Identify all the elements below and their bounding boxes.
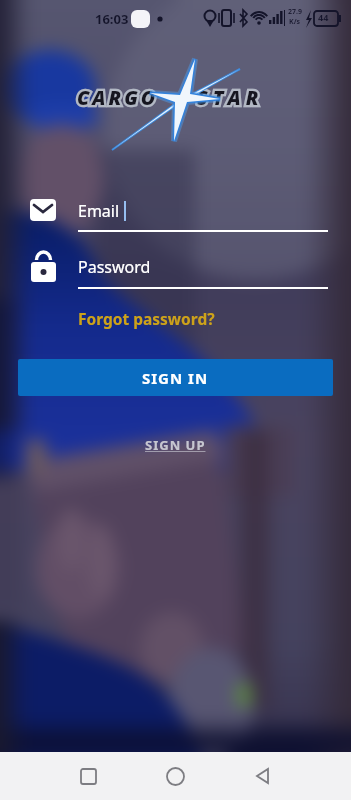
staticText: K/s [289,17,301,27]
staticText: STAR [197,84,264,111]
staticText: CARGO [77,84,159,111]
staticText: Email [78,200,120,222]
button[interactable]: Password [78,256,328,288]
staticText: Password [78,256,151,278]
button[interactable] [219,752,306,800]
button[interactable] [132,752,219,800]
button[interactable]: SIGN UP [145,436,206,454]
staticText: 44 [318,11,329,23]
button[interactable]: SIGN IN [18,359,333,396]
button[interactable] [45,752,132,800]
button[interactable]: Forgot password? [78,308,215,329]
staticText: CARGO [77,84,159,111]
staticText: SIGN IN [142,368,209,388]
staticText: 16:03 [95,10,129,28]
staticText: Forgot password? [78,308,215,329]
staticText: SIGN UP [145,436,206,454]
button[interactable]: Email [78,200,328,232]
staticText: STAR [197,84,264,111]
staticText: 27.9 [288,7,302,17]
